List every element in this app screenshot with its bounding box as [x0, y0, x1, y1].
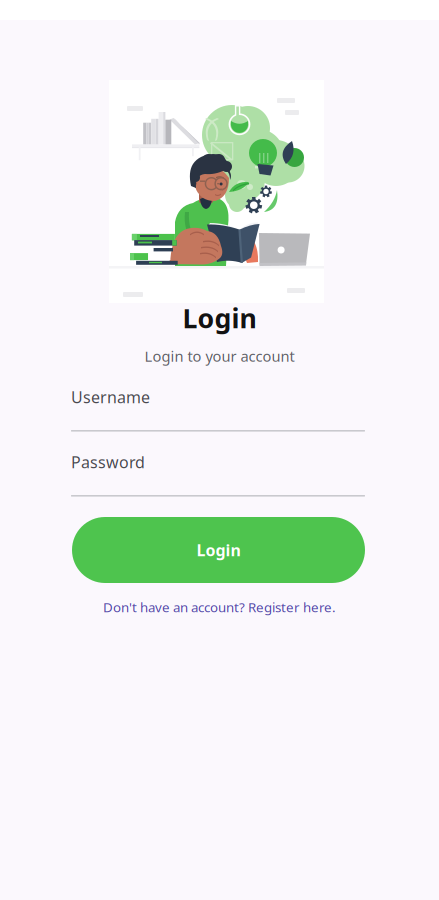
- staticText: Username: [71, 386, 150, 408]
- button[interactable]: Don't have an account? Register here.: [0, 597, 439, 617]
- staticText: Login to your account: [144, 346, 294, 366]
- staticText: Login: [196, 539, 240, 561]
- staticText: Login: [182, 300, 256, 336]
- staticText: Password: [71, 451, 145, 473]
- staticText: Don't have an account? Register here.: [103, 598, 336, 616]
- button[interactable]: Login: [72, 517, 365, 583]
